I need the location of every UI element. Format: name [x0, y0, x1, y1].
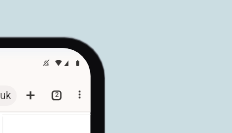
button[interactable] [0, 86, 17, 107]
button[interactable]: New tab [23, 87, 39, 103]
button[interactable]: Switch tabs [49, 87, 65, 103]
button[interactable]: More options [72, 87, 88, 103]
staticText: news.bbc.co.uk [0, 89, 11, 101]
staticText: 2 [55, 91, 59, 99]
